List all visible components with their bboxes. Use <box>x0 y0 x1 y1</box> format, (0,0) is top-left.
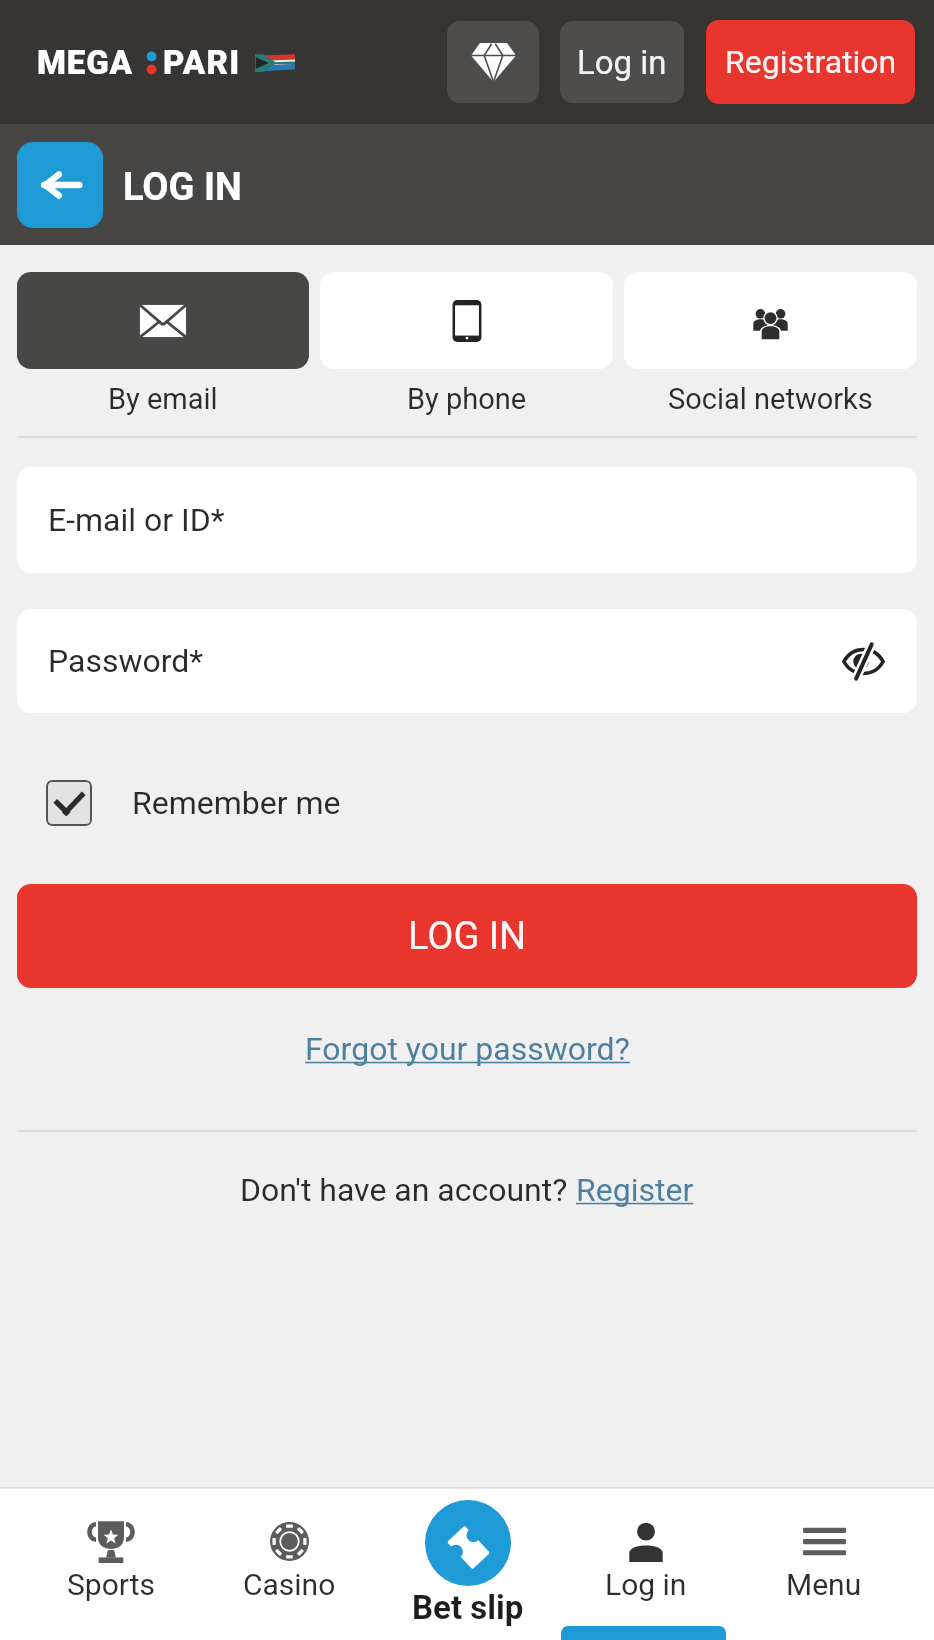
button[interactable] <box>320 272 613 369</box>
staticText: By email <box>108 382 218 416</box>
button[interactable]: Casino <box>200 1487 379 1640</box>
staticText: Menu <box>786 1567 862 1602</box>
staticText: Social networks <box>668 382 873 416</box>
staticText: Sports <box>67 1567 155 1602</box>
button[interactable]: Show password <box>835 633 891 689</box>
staticText: Log in <box>577 43 667 82</box>
button[interactable]: Bet slip <box>379 1487 557 1640</box>
button[interactable]: Sports <box>21 1487 200 1640</box>
staticText: PARI <box>163 43 241 82</box>
staticText: Log in <box>605 1567 687 1602</box>
button[interactable] <box>17 272 309 369</box>
staticText: Password* <box>48 642 204 680</box>
button[interactable] <box>624 272 917 369</box>
button[interactable]: Menu <box>735 1487 913 1640</box>
button[interactable]: Log in <box>560 21 684 103</box>
button[interactable]: Remember me <box>46 780 341 826</box>
button[interactable]: Register <box>576 1171 694 1209</box>
button[interactable]: E-mail or ID* <box>17 467 917 573</box>
button[interactable]: Back <box>17 142 103 228</box>
button[interactable]: Registration <box>706 20 915 104</box>
staticText: Bet slip <box>412 1588 524 1627</box>
staticText: Remember me <box>132 784 341 822</box>
button[interactable]: Log in <box>557 1487 735 1640</box>
button[interactable]: Password* <box>17 609 917 713</box>
staticText: By phone <box>407 382 527 416</box>
staticText: LOG IN <box>123 165 242 210</box>
staticText: Casino <box>243 1567 336 1602</box>
staticText: LOG IN <box>408 914 527 959</box>
staticText: Registration <box>725 43 897 81</box>
button[interactable]: VIP <box>447 21 539 103</box>
button[interactable]: Forgot your password? <box>305 1030 630 1068</box>
staticText: MEGA <box>37 43 133 82</box>
staticText: E-mail or ID* <box>48 501 225 539</box>
staticText: Don't have an account? <box>240 1171 576 1209</box>
button[interactable]: LOG IN <box>17 884 917 988</box>
